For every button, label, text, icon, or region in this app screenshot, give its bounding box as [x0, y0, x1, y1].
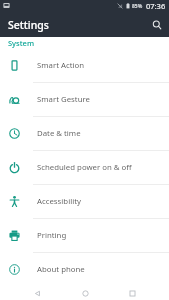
staticText: Smart Action: [37, 60, 85, 71]
staticText: Printing: [37, 230, 67, 241]
staticText: System: [8, 38, 35, 48]
staticText: Settings: [8, 18, 49, 32]
button[interactable]: About phone: [0, 253, 169, 286]
button[interactable]: Smart Gesture: [0, 83, 169, 116]
staticText: 07:36: [146, 1, 166, 11]
staticText: Scheduled power on & off: [37, 162, 132, 173]
button[interactable]: Scheduled power on & off: [0, 151, 169, 184]
staticText: Accessibility: [37, 196, 81, 207]
button[interactable]: Printing: [0, 219, 169, 252]
button[interactable]: Recents: [122, 286, 142, 300]
button[interactable]: Smart Action: [0, 49, 169, 82]
button[interactable]: Search: [145, 13, 169, 37]
button[interactable]: Accessibility: [0, 185, 169, 218]
button[interactable]: Home: [75, 286, 95, 300]
button[interactable]: Back: [27, 286, 47, 300]
staticText: Date & time: [37, 128, 81, 139]
button[interactable]: Date & time: [0, 117, 169, 150]
staticText: Smart Gesture: [37, 94, 90, 105]
staticText: 85%: [132, 3, 143, 10]
staticText: About phone: [37, 264, 85, 275]
